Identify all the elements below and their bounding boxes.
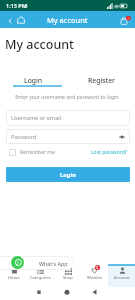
staticText: Password <box>11 133 37 141</box>
button[interactable]: What's App <box>0 256 74 270</box>
staticText: Remember me <box>20 149 55 156</box>
staticText: Login <box>60 171 77 179</box>
staticText: 3 <box>96 265 99 270</box>
staticText: Username or email <box>11 114 62 122</box>
button[interactable]: Login <box>6 167 130 182</box>
staticText: 1:15 PM <box>6 2 27 9</box>
button[interactable]: Username or email <box>6 110 130 126</box>
staticText: Categories <box>30 275 51 281</box>
staticText: Register <box>88 76 115 85</box>
staticText: Login <box>24 76 43 85</box>
staticText: My account <box>47 15 88 25</box>
staticText: Enter your username and password to logi… <box>15 94 120 101</box>
button[interactable]: Password <box>6 129 130 144</box>
button[interactable]: 3 <box>81 264 108 287</box>
staticText: What's App <box>39 260 68 267</box>
staticText: Home <box>8 275 20 281</box>
button[interactable]: Shop <box>54 264 81 287</box>
button[interactable]: Back <box>4 15 15 26</box>
staticText: Shop <box>63 275 73 281</box>
staticText: Account <box>114 275 130 281</box>
button[interactable]: Remember me <box>6 149 57 156</box>
button[interactable]: Login <box>0 72 67 88</box>
button[interactable]: Home <box>15 14 27 26</box>
button[interactable]: Categories <box>27 264 54 287</box>
staticText: Wishlist <box>87 275 102 281</box>
staticText: Lost password? <box>91 149 127 156</box>
button[interactable]: Register <box>67 72 135 88</box>
staticText: My account <box>5 36 74 53</box>
button[interactable]: Home <box>0 264 27 287</box>
button[interactable]: WhatsApp <box>11 256 24 269</box>
button[interactable]: Lost password? <box>91 149 129 156</box>
button[interactable]: Cart <box>117 12 133 28</box>
button[interactable]: Account <box>108 264 135 287</box>
